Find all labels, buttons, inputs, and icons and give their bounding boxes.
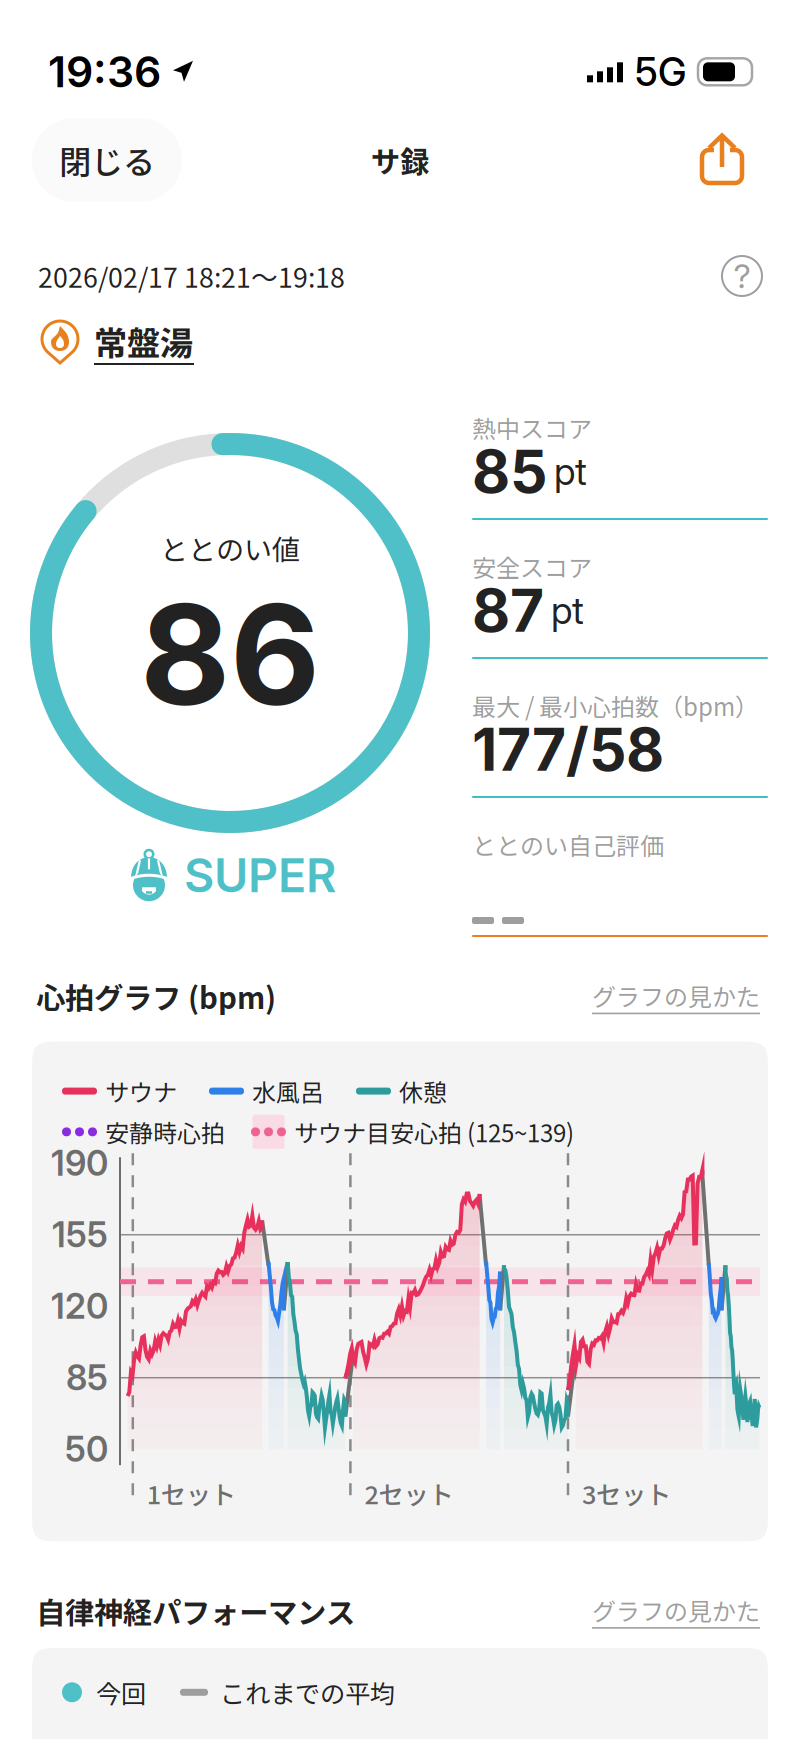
staticText: 19:36 bbox=[48, 46, 161, 98]
staticText: pt bbox=[554, 449, 587, 494]
staticText: サウナ目安心拍 (125~139) bbox=[294, 1114, 574, 1149]
staticText: 87 bbox=[472, 575, 544, 646]
button[interactable]: 常盤湯 bbox=[0, 296, 800, 366]
staticText: 水風呂 bbox=[252, 1074, 324, 1108]
button[interactable]: 閉じる bbox=[32, 118, 182, 202]
staticText: サウナ bbox=[105, 1074, 177, 1108]
staticText: 5G bbox=[635, 48, 686, 95]
staticText: 177/58 bbox=[472, 714, 664, 785]
staticText: 最大 / 最小心拍数（bpm） bbox=[472, 688, 759, 723]
staticText: 85 bbox=[472, 436, 547, 507]
staticText: 閉じる bbox=[59, 137, 155, 183]
staticText: 155 bbox=[52, 1214, 108, 1256]
staticText: 自律神経パフォーマンス bbox=[36, 1589, 355, 1632]
staticText: SUPER bbox=[184, 847, 336, 903]
staticText: 安静時心拍 bbox=[105, 1114, 225, 1149]
staticText: 熱中スコア bbox=[472, 410, 592, 445]
button[interactable]: グラフの見かた bbox=[592, 1593, 764, 1629]
staticText: 休憩 bbox=[399, 1074, 447, 1108]
staticText: 安全スコア bbox=[472, 549, 592, 584]
staticText: 3セット bbox=[582, 1475, 671, 1512]
staticText: グラフの見かた bbox=[592, 978, 760, 1013]
staticText: これまでの平均 bbox=[220, 1674, 395, 1711]
staticText: 2026/02/17 18:21〜19:18 bbox=[38, 257, 345, 295]
staticText: 常盤湯 bbox=[94, 317, 193, 365]
staticText: pt bbox=[551, 588, 584, 633]
staticText: ととのい値 bbox=[160, 528, 300, 568]
staticText: ? bbox=[733, 256, 750, 296]
button[interactable]: グラフの見かた bbox=[592, 978, 764, 1014]
staticText: 50 bbox=[65, 1428, 108, 1470]
staticText: サ録 bbox=[371, 139, 429, 181]
staticText: 85 bbox=[66, 1357, 108, 1399]
staticText: 2セット bbox=[364, 1475, 453, 1512]
staticText: ととのい自己評価 bbox=[472, 827, 664, 862]
staticText: 心拍グラフ (bpm) bbox=[36, 975, 276, 1017]
button[interactable]: 共有 bbox=[678, 115, 768, 205]
staticText: グラフの見かた bbox=[592, 1593, 760, 1627]
staticText: 86 bbox=[140, 570, 320, 738]
staticText: 190 bbox=[51, 1142, 108, 1184]
staticText: 今回 bbox=[96, 1674, 146, 1711]
staticText: 1セット bbox=[147, 1475, 236, 1512]
button[interactable]: ヘルプ bbox=[722, 256, 762, 296]
staticText: 120 bbox=[51, 1285, 108, 1327]
